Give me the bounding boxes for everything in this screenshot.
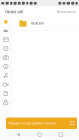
staticText: Aktualizovat	[56, 10, 75, 14]
button[interactable]: Cloud	[3, 27, 9, 33]
button[interactable]: Zpět	[15, 131, 21, 137]
button[interactable]: Soukromé	[3, 99, 9, 105]
staticText: Okolní sítě	[5, 9, 23, 14]
button[interactable]: Domů	[3, 18, 9, 24]
button[interactable]: VOLTA-AIR	[12, 17, 79, 30]
button[interactable]: Stažené	[3, 63, 9, 69]
button[interactable]: Videa	[3, 81, 9, 87]
staticText: VOLTA-AIR	[31, 22, 44, 25]
staticText: Připojte se pro přidání serveru	[8, 121, 56, 126]
button[interactable]: Plocha	[36, 131, 42, 137]
button[interactable]: Dokumenty	[3, 90, 9, 96]
button[interactable]: Nedávné	[3, 45, 9, 51]
button[interactable]: Okolní sítě	[0, 6, 26, 17]
button[interactable]: Připojte se pro přidání serveru	[6, 117, 77, 129]
button[interactable]: Hudba	[3, 72, 9, 78]
button[interactable]: Aktualizovat	[53, 6, 79, 17]
button[interactable]: Poslední aplikace	[58, 131, 64, 137]
button[interactable]: Úložiště	[3, 36, 9, 42]
button[interactable]: Obrázky	[3, 54, 9, 60]
